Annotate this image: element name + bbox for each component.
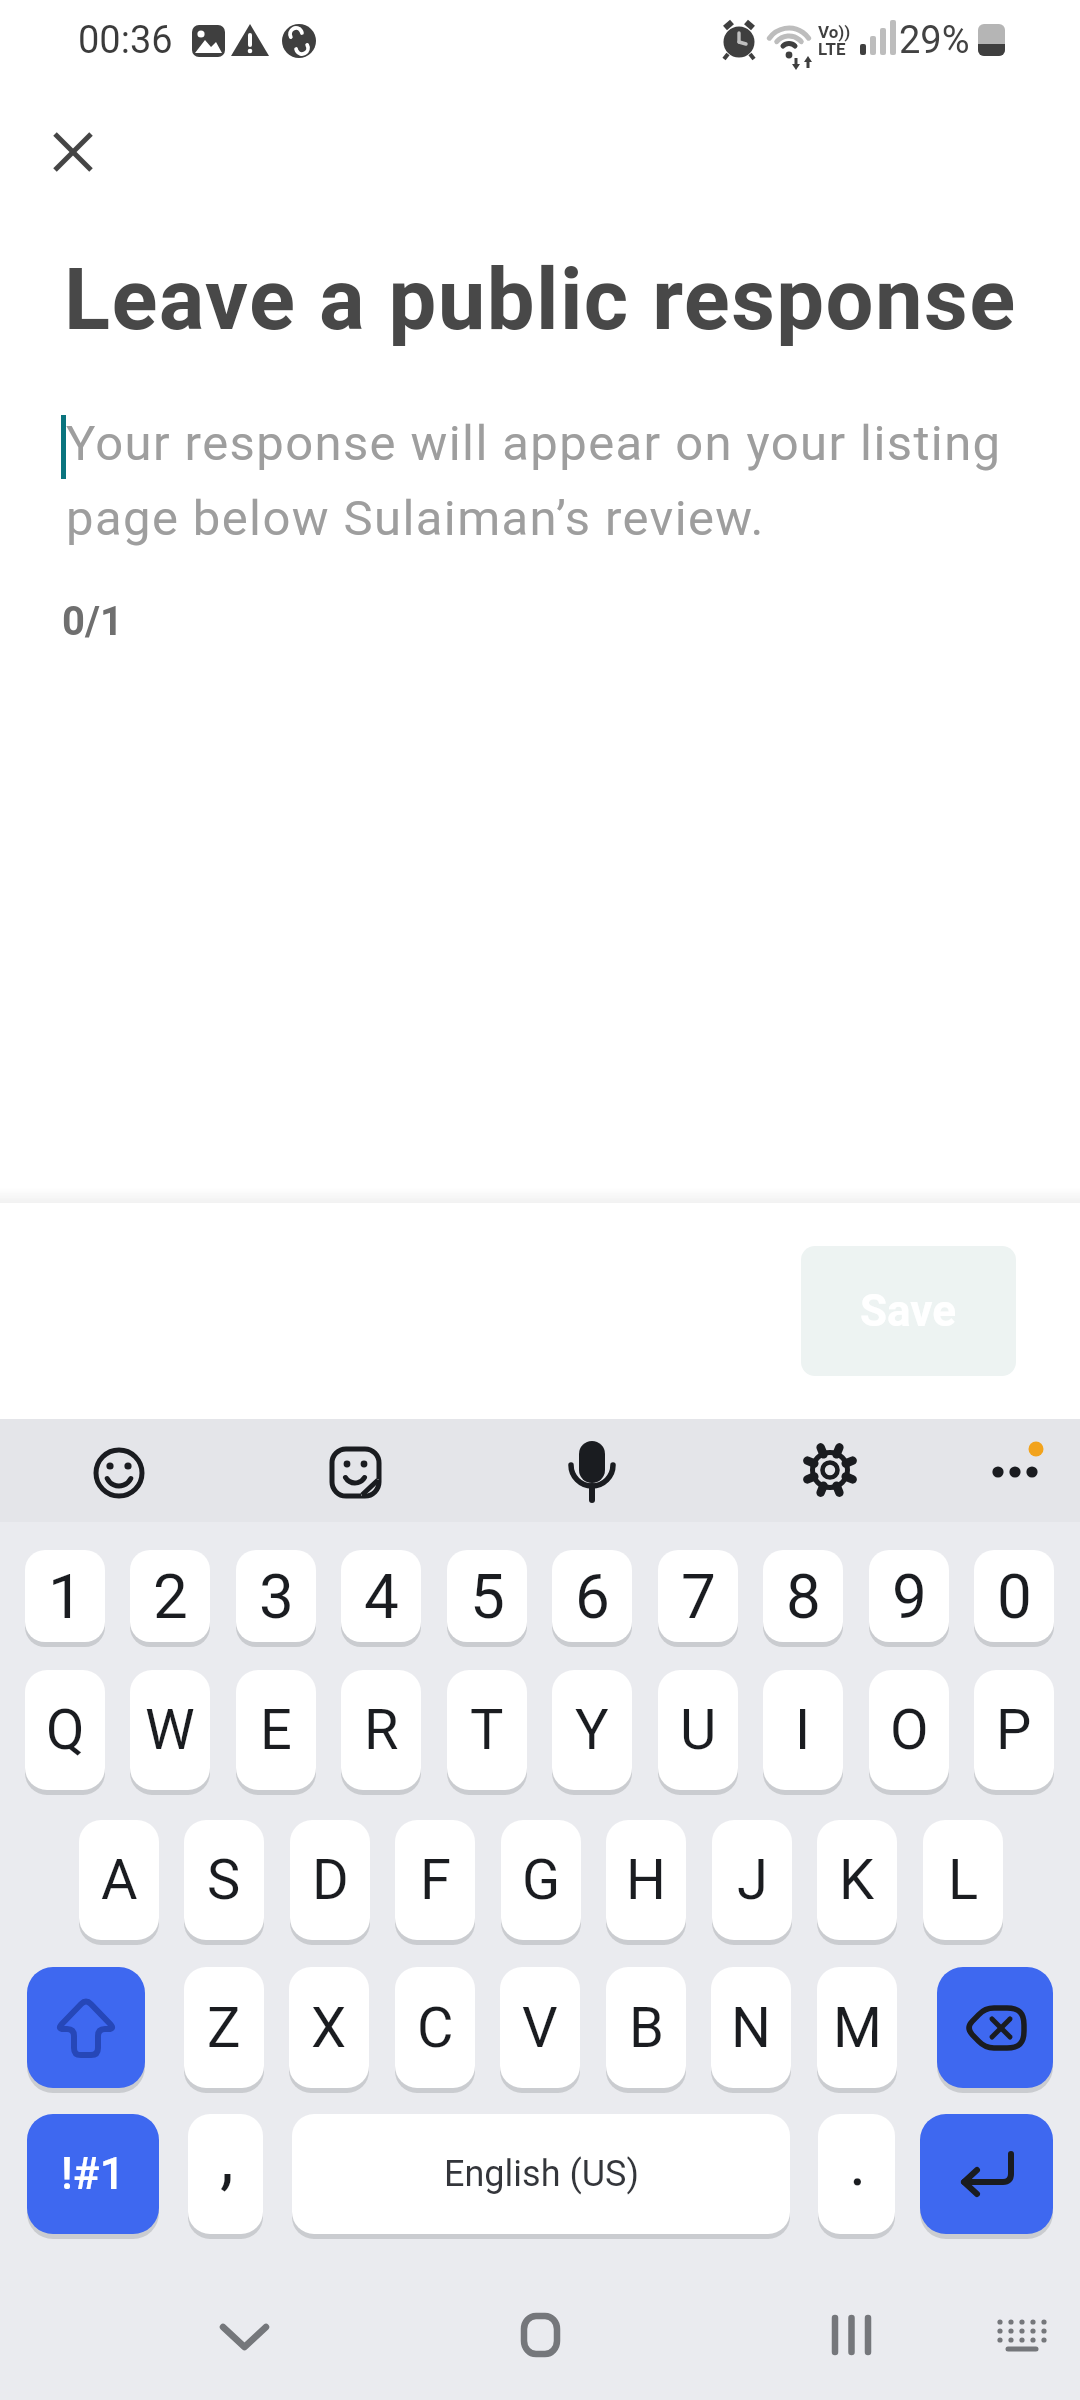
button[interactable]: 0 [974,1550,1054,1642]
button[interactable]: T [447,1670,527,1790]
staticText: K [839,1847,875,1913]
staticText: Vo)) [818,22,851,42]
button[interactable] [920,2114,1053,2234]
staticText: P [996,1697,1032,1763]
button[interactable]: O [869,1670,949,1790]
staticText: 3 [259,1560,294,1633]
button[interactable]: F [395,1820,475,1940]
button[interactable]: Q [25,1670,105,1790]
staticText: L [948,1847,979,1913]
button[interactable] [937,1967,1053,2088]
button[interactable] [968,1426,1058,1516]
button[interactable]: Save [801,1246,1016,1376]
button[interactable] [40,400,1040,600]
staticText: 1 [48,1560,83,1633]
button[interactable]: L [923,1820,1003,1940]
button[interactable]: B [606,1967,686,2088]
button[interactable]: 5 [447,1550,527,1642]
button[interactable]: G [501,1820,581,1940]
button[interactable] [971,2285,1071,2385]
button[interactable]: 6 [552,1550,632,1642]
button[interactable]: English (US) [292,2114,790,2234]
button[interactable]: X [289,1967,369,2088]
staticText: M [833,1995,882,2061]
button[interactable]: !#1 [27,2114,159,2234]
button[interactable]: I [763,1670,843,1790]
staticText: T [470,1697,504,1763]
staticText: 0/1 [62,598,123,645]
button[interactable]: 8 [763,1550,843,1642]
staticText: I [795,1697,811,1763]
button[interactable]: 7 [658,1550,738,1642]
button[interactable]: K [817,1820,897,1940]
button[interactable] [785,1426,875,1516]
button[interactable]: V [500,1967,580,2088]
staticText: 7 [681,1560,716,1633]
staticText: F [420,1847,451,1913]
staticText: E [260,1697,292,1763]
button[interactable] [490,2285,590,2385]
button[interactable]: W [130,1670,210,1790]
staticText: English (US) [444,2153,639,2195]
staticText: D [312,1847,349,1913]
staticText: 4 [364,1560,399,1633]
button[interactable]: H [606,1820,686,1940]
staticText: 2 [153,1560,188,1633]
staticText: , [220,2117,234,2199]
staticText: 9 [892,1560,927,1633]
button[interactable]: D [290,1820,370,1940]
staticText: Your response will appear on your listin… [66,415,1002,547]
staticText: . [849,2124,867,2201]
staticText: 6 [575,1560,610,1633]
button[interactable]: E [236,1670,316,1790]
staticText: N [731,1995,771,2061]
button[interactable] [194,2285,294,2385]
staticText: R [364,1697,399,1763]
button[interactable]: , [188,2114,263,2234]
staticText: B [629,1995,664,2061]
button[interactable]: S [184,1820,264,1940]
button[interactable] [310,1426,400,1516]
button[interactable] [801,2285,901,2385]
staticText: G [522,1847,561,1913]
staticText: J [737,1847,768,1913]
button[interactable] [27,1967,145,2088]
button[interactable]: R [341,1670,421,1790]
staticText: 00:36 [78,18,173,63]
staticText: S [207,1847,241,1913]
button[interactable]: M [817,1967,897,2088]
button[interactable]: U [658,1670,738,1790]
button[interactable]: C [395,1967,475,2088]
button[interactable]: Y [552,1670,632,1790]
staticText: X [311,1995,347,2061]
button[interactable]: A [79,1820,159,1940]
staticText: C [417,1995,454,2061]
staticText: Save [860,1285,957,1337]
button[interactable]: 3 [236,1550,316,1642]
button[interactable] [74,1426,164,1516]
button[interactable]: N [711,1967,791,2088]
button[interactable]: 4 [341,1550,421,1642]
staticText: !#1 [61,2148,125,2200]
staticText: 8 [786,1560,821,1633]
staticText: 5 [470,1560,505,1633]
staticText: O [890,1697,929,1763]
staticText: V [522,1995,558,2061]
button[interactable]: 2 [130,1550,210,1642]
staticText: Leave a public response [64,250,1017,350]
button[interactable] [547,1426,637,1516]
button[interactable]: J [712,1820,792,1940]
staticText: 0 [997,1560,1032,1633]
staticText: A [101,1847,138,1913]
staticText: Y [575,1697,609,1763]
button[interactable]: Z [184,1967,264,2088]
staticText: 29% [899,18,970,63]
staticText: U [680,1697,717,1763]
button[interactable]: P [974,1670,1054,1790]
button[interactable]: 9 [869,1550,949,1642]
staticText: Z [207,1995,241,2061]
button[interactable] [43,122,103,182]
button[interactable]: 1 [25,1550,105,1642]
button[interactable]: . [818,2114,895,2234]
staticText: LTE [818,39,846,59]
